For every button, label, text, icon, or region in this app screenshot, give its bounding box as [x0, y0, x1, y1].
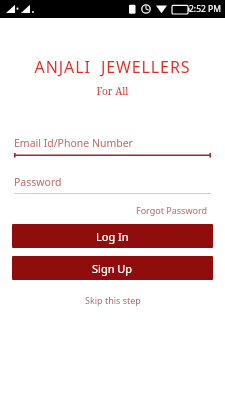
staticText: Sign Up — [92, 261, 133, 276]
staticText: ANJALI JEWELLERS — [0, 56, 225, 78]
staticText: Log In — [96, 229, 129, 244]
button[interactable]: Sign Up — [12, 256, 213, 280]
button[interactable]: Skip this step — [82, 291, 144, 309]
staticText: Email Id/Phone Number — [14, 136, 133, 150]
button[interactable]: Forgot Password — [133, 201, 211, 219]
staticText: For All — [0, 84, 225, 98]
staticText: Password — [14, 175, 62, 189]
button[interactable]: Log In — [12, 224, 213, 248]
button[interactable]: Email Id/Phone Number — [14, 136, 211, 159]
staticText: 2:52 PM — [189, 3, 221, 15]
button[interactable]: Password — [14, 175, 211, 194]
